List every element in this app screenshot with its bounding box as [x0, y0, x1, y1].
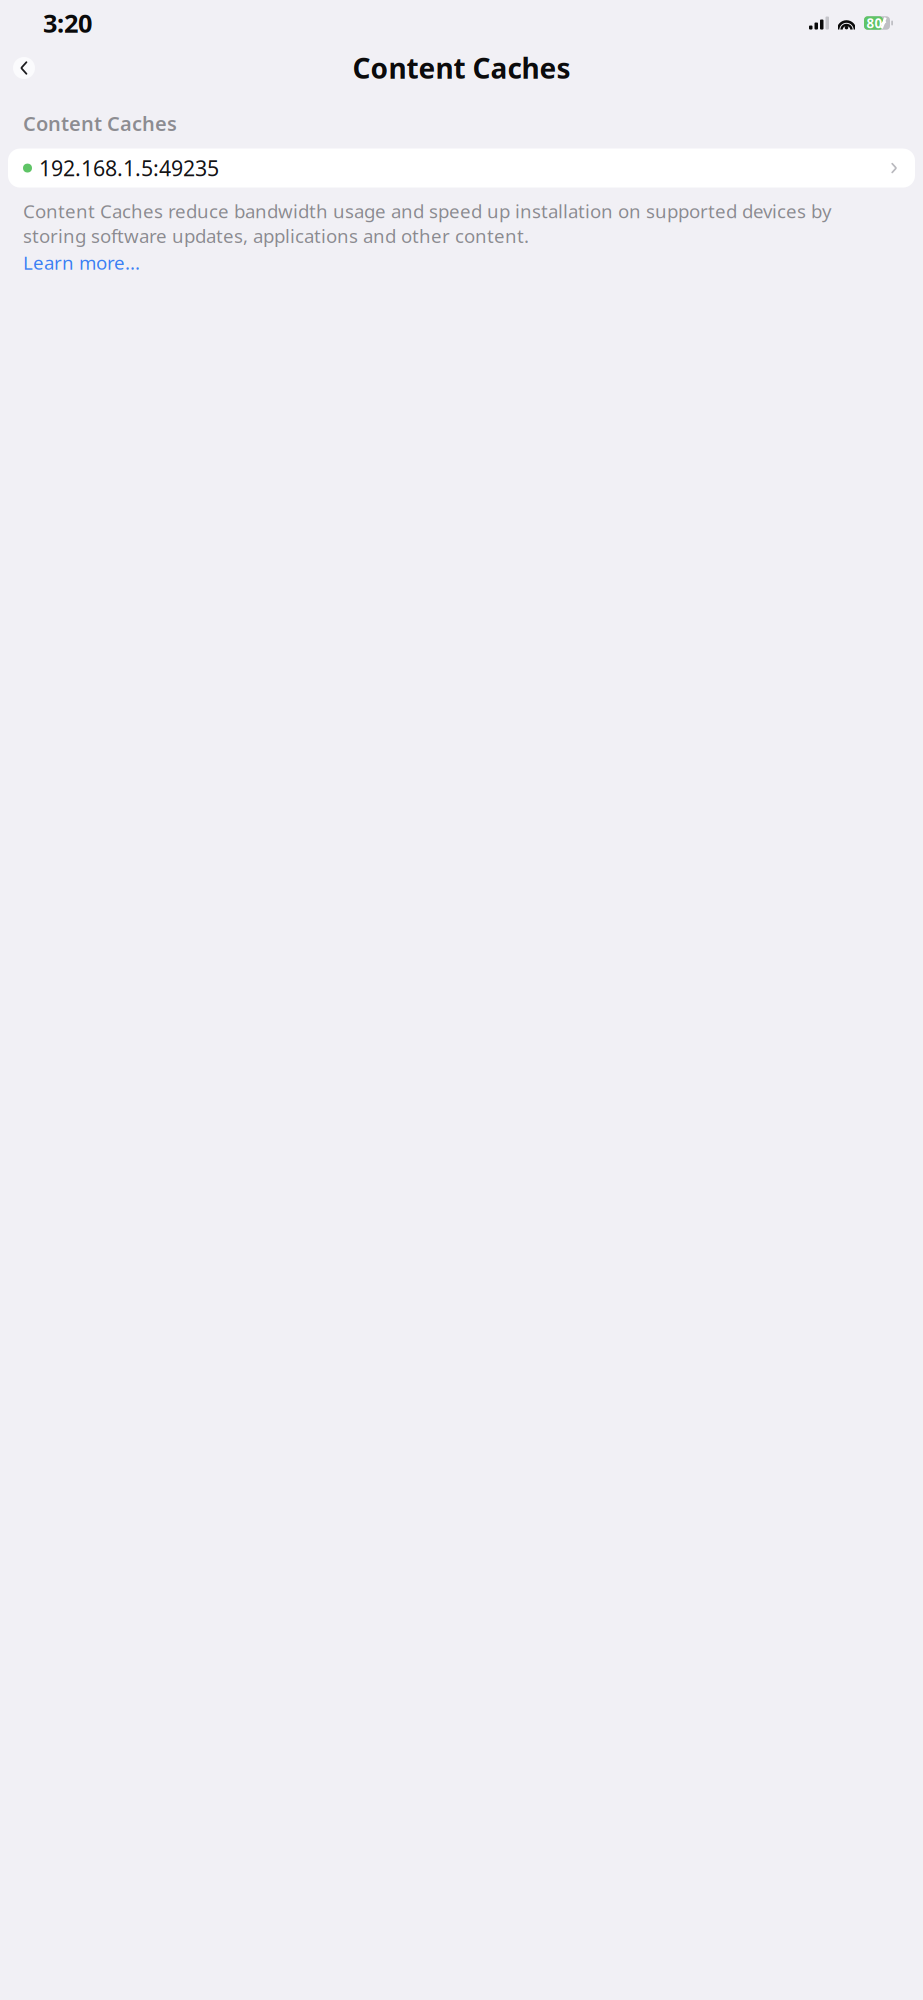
- button[interactable]: Learn more...: [8, 248, 140, 275]
- staticText: 3:20: [43, 6, 92, 40]
- staticText: Learn more...: [23, 250, 140, 275]
- button[interactable]: 192.168.1.5:49235: [8, 149, 915, 188]
- button[interactable]: Back: [13, 57, 35, 79]
- staticText: Content Caches: [352, 49, 570, 87]
- staticText: 192.168.1.5:49235: [39, 154, 219, 182]
- staticText: 80: [866, 14, 882, 32]
- staticText: Content Caches reduce bandwidth usage an…: [23, 199, 832, 248]
- staticText: Content Caches: [23, 110, 177, 137]
